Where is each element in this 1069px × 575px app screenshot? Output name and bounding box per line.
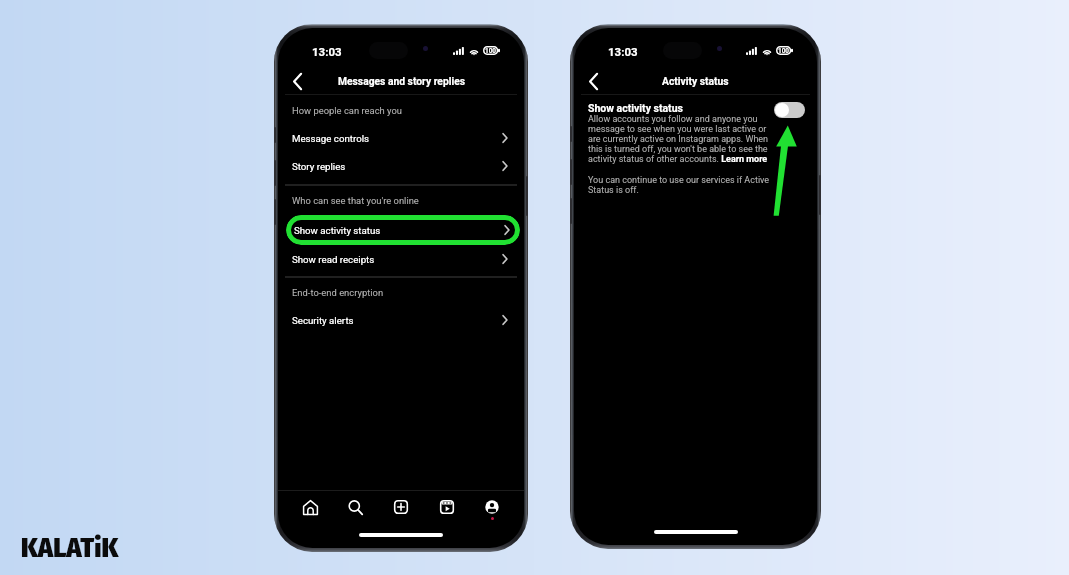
staticText: Who can see that you're online [292,195,419,206]
staticText: 100 [485,47,496,55]
button[interactable]: Profile [478,493,506,521]
button[interactable]: Story replies [278,152,524,180]
button[interactable]: Create [387,493,415,521]
staticText: Show activity status [294,225,381,236]
button[interactable]: Message controls [278,124,524,152]
button[interactable]: Back [581,69,605,93]
staticText: Show activity status [588,102,683,114]
button[interactable]: Home [296,493,324,521]
staticText: Allow accounts you follow and anyone you… [588,114,774,164]
button[interactable]: Security alerts [278,306,524,334]
staticText: How people can reach you [292,105,402,116]
staticText: Security alerts [292,315,354,326]
button[interactable]: Reels [433,493,461,521]
staticText: Story replies [292,161,346,172]
staticText: 100 [778,47,789,55]
staticText: End-to-end encryption [292,287,384,298]
button[interactable]: Show activity status toggle [774,102,805,118]
staticText: 13:03 [312,45,342,58]
button[interactable]: Show activity status [286,215,520,245]
button[interactable]: Show read receipts [278,245,524,273]
staticText: You can continue to use our services if … [588,175,774,195]
staticText: Activity status [662,75,729,87]
button[interactable]: Back [285,69,309,93]
staticText: Messages and story replies [338,75,465,87]
button[interactable]: Search [341,493,369,521]
staticText: 13:03 [608,45,638,58]
staticText: Show read receipts [292,254,375,265]
staticText: KALATiK [21,531,119,564]
staticText: Message controls [292,133,370,144]
